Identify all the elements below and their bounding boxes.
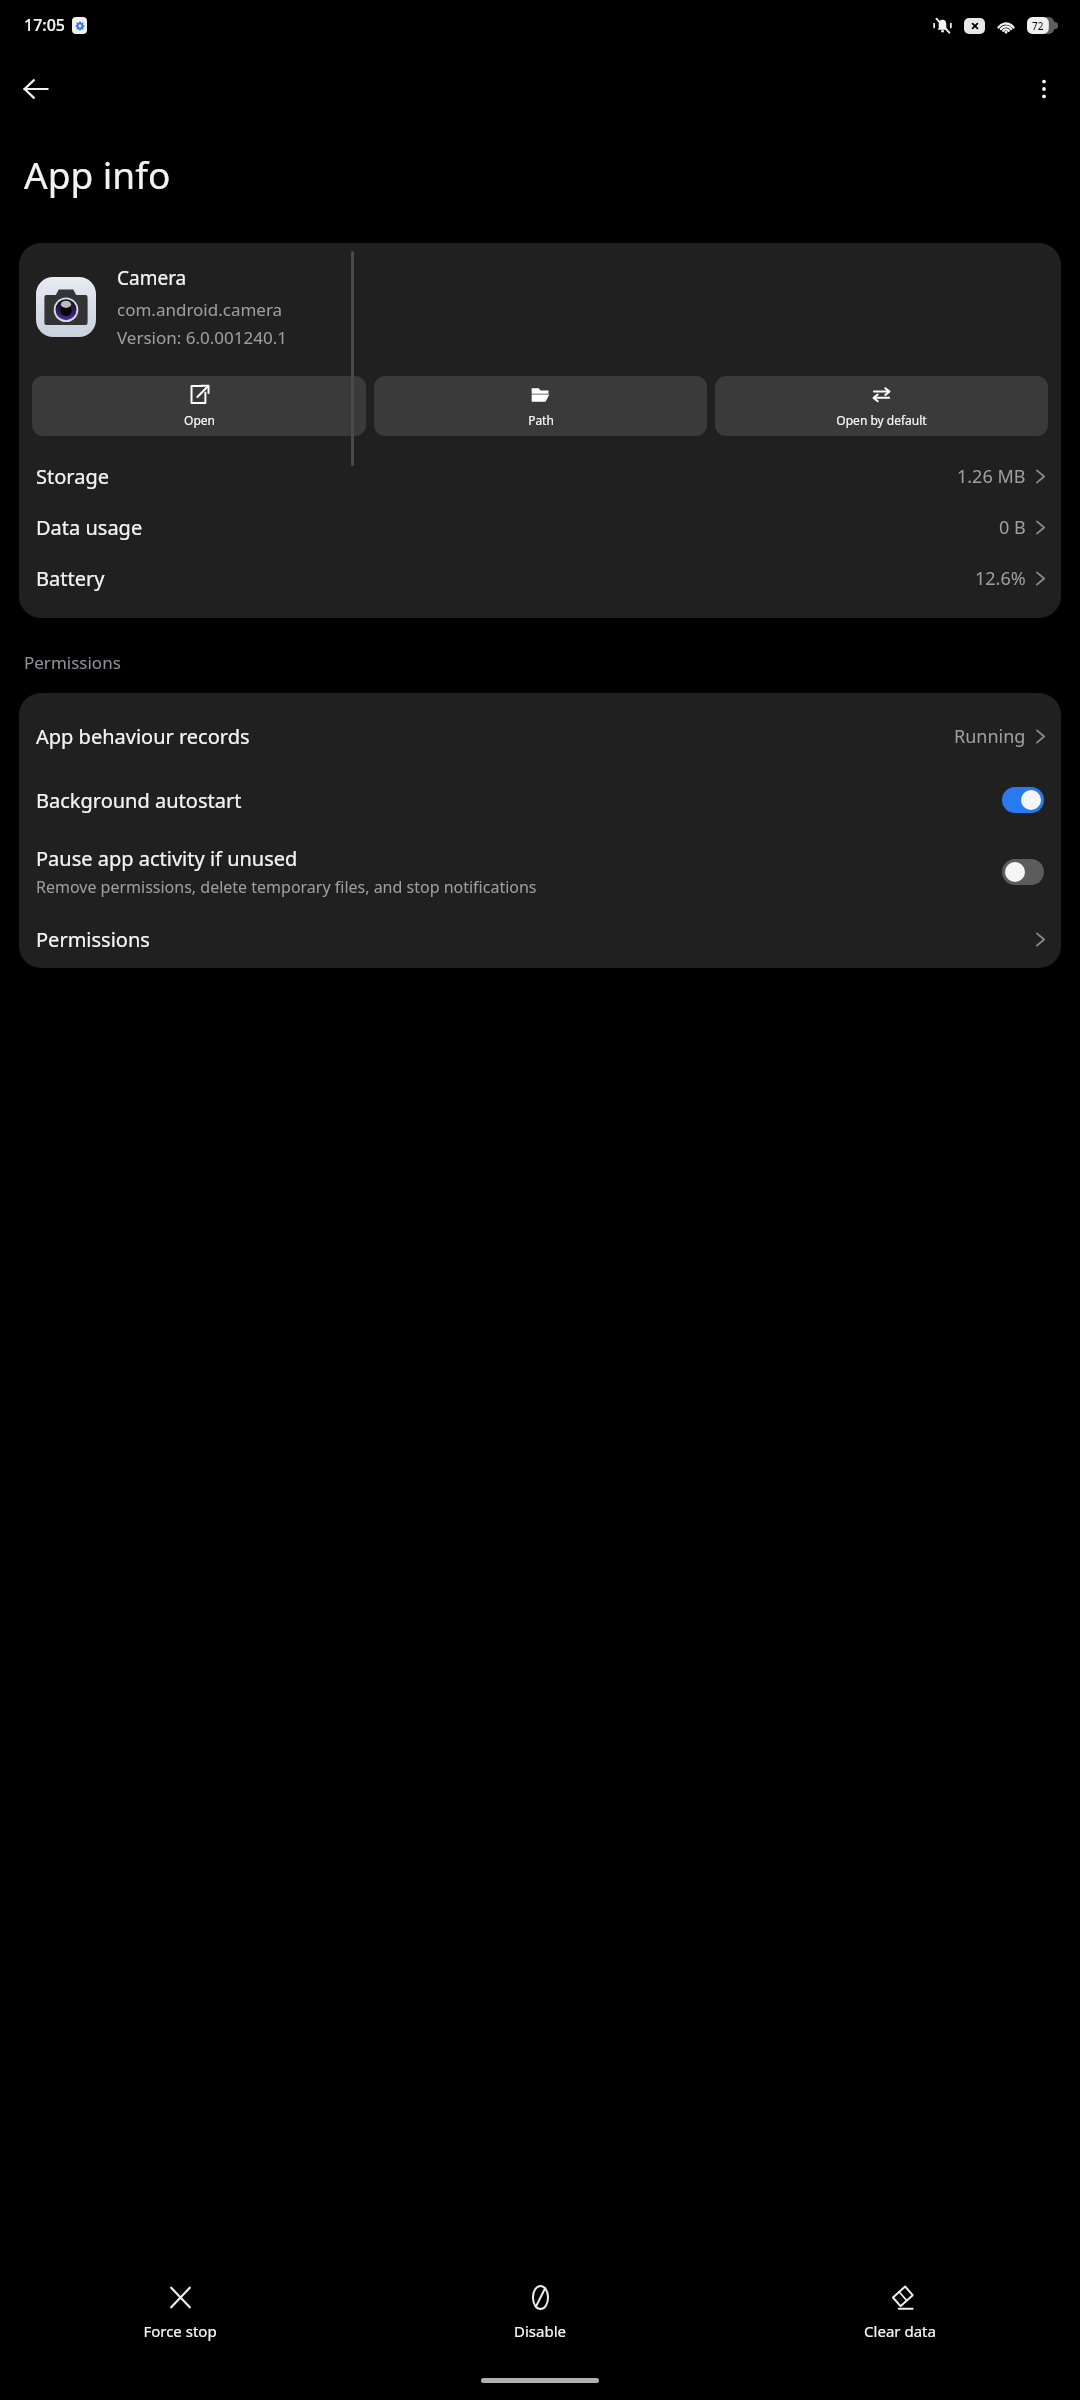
staticText: Storage [36, 463, 109, 490]
button[interactable]: Clear data [720, 2277, 1080, 2347]
staticText: App behaviour records [36, 723, 250, 750]
staticText: Permissions [36, 926, 150, 953]
staticText: Clear data [864, 2321, 936, 2341]
staticText: App info [24, 149, 171, 199]
staticText: 1.26 MB [957, 464, 1026, 489]
button[interactable]: Off [1002, 859, 1044, 885]
staticText: 0 B [999, 515, 1026, 540]
staticText: Battery [36, 565, 105, 592]
staticText: Remove permissions, delete temporary fil… [36, 876, 537, 898]
staticText: Running [954, 724, 1026, 749]
staticText: com.android.camera [117, 298, 283, 321]
button[interactable]: Open by default [715, 376, 1048, 436]
button[interactable]: Data usage [19, 502, 1061, 553]
button[interactable]: Battery [19, 553, 1061, 604]
button[interactable]: More options [1020, 65, 1068, 113]
button[interactable]: Background autostart [19, 767, 1061, 833]
staticText: Disable [514, 2321, 566, 2341]
button[interactable]: Permissions [19, 910, 1061, 968]
button[interactable]: Disable [360, 2277, 720, 2347]
staticText: Background autostart [36, 787, 242, 814]
staticText: Version: 6.0.001240.1 [117, 326, 287, 349]
button[interactable]: Storage [19, 451, 1061, 502]
button[interactable]: Pause app activity if unused [19, 833, 1061, 910]
button[interactable]: On [1002, 787, 1044, 813]
staticText: Open [184, 412, 215, 428]
staticText: Camera [117, 265, 187, 291]
button[interactable]: Force stop [0, 2277, 360, 2347]
staticText: Pause app activity if unused [36, 845, 298, 872]
staticText: Data usage [36, 514, 143, 541]
button[interactable]: App behaviour records [19, 705, 1061, 767]
button[interactable]: Back [12, 65, 60, 113]
staticText: Open by default [836, 412, 927, 428]
button[interactable]: Open [32, 376, 366, 436]
staticText: Path [528, 412, 554, 428]
staticText: 12.6% [975, 566, 1026, 591]
staticText: Force stop [143, 2321, 217, 2341]
staticText: Permissions [24, 651, 121, 674]
button[interactable]: Path [374, 376, 707, 436]
staticText: 17:05 [24, 14, 65, 36]
staticText: 72 [1032, 19, 1044, 33]
